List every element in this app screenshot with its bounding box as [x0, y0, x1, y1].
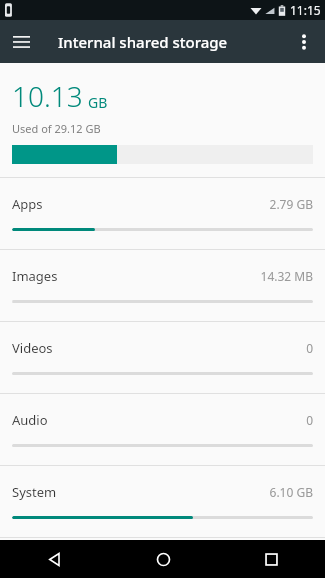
button[interactable]: Videos: [0, 322, 325, 393]
staticText: Apps: [12, 195, 43, 213]
staticText: Images: [12, 267, 58, 285]
staticText: 14.32 MB: [260, 268, 313, 284]
staticText: Audio: [12, 411, 48, 429]
button[interactable]: Back: [0, 540, 109, 578]
staticText: 6.10 GB: [269, 484, 313, 500]
button[interactable]: More options: [282, 20, 325, 63]
button[interactable]: Images: [0, 250, 325, 321]
staticText: 2.79 GB: [269, 196, 313, 212]
button[interactable]: Open navigation drawer: [0, 20, 43, 63]
button[interactable]: Recent apps: [217, 540, 325, 578]
staticText: GB: [88, 93, 108, 112]
staticText: 0: [306, 412, 313, 428]
button[interactable]: Audio: [0, 394, 325, 465]
staticText: Videos: [12, 339, 53, 357]
staticText: 11:15: [290, 2, 321, 18]
staticText: 10.13: [12, 77, 83, 115]
staticText: Internal shared storage: [58, 32, 228, 52]
staticText: System: [12, 483, 57, 501]
button[interactable]: Apps: [0, 178, 325, 249]
button[interactable]: Home: [109, 540, 217, 578]
staticText: 0: [306, 340, 313, 356]
button[interactable]: System: [0, 466, 325, 537]
staticText: Used of 29.12 GB: [12, 121, 101, 136]
